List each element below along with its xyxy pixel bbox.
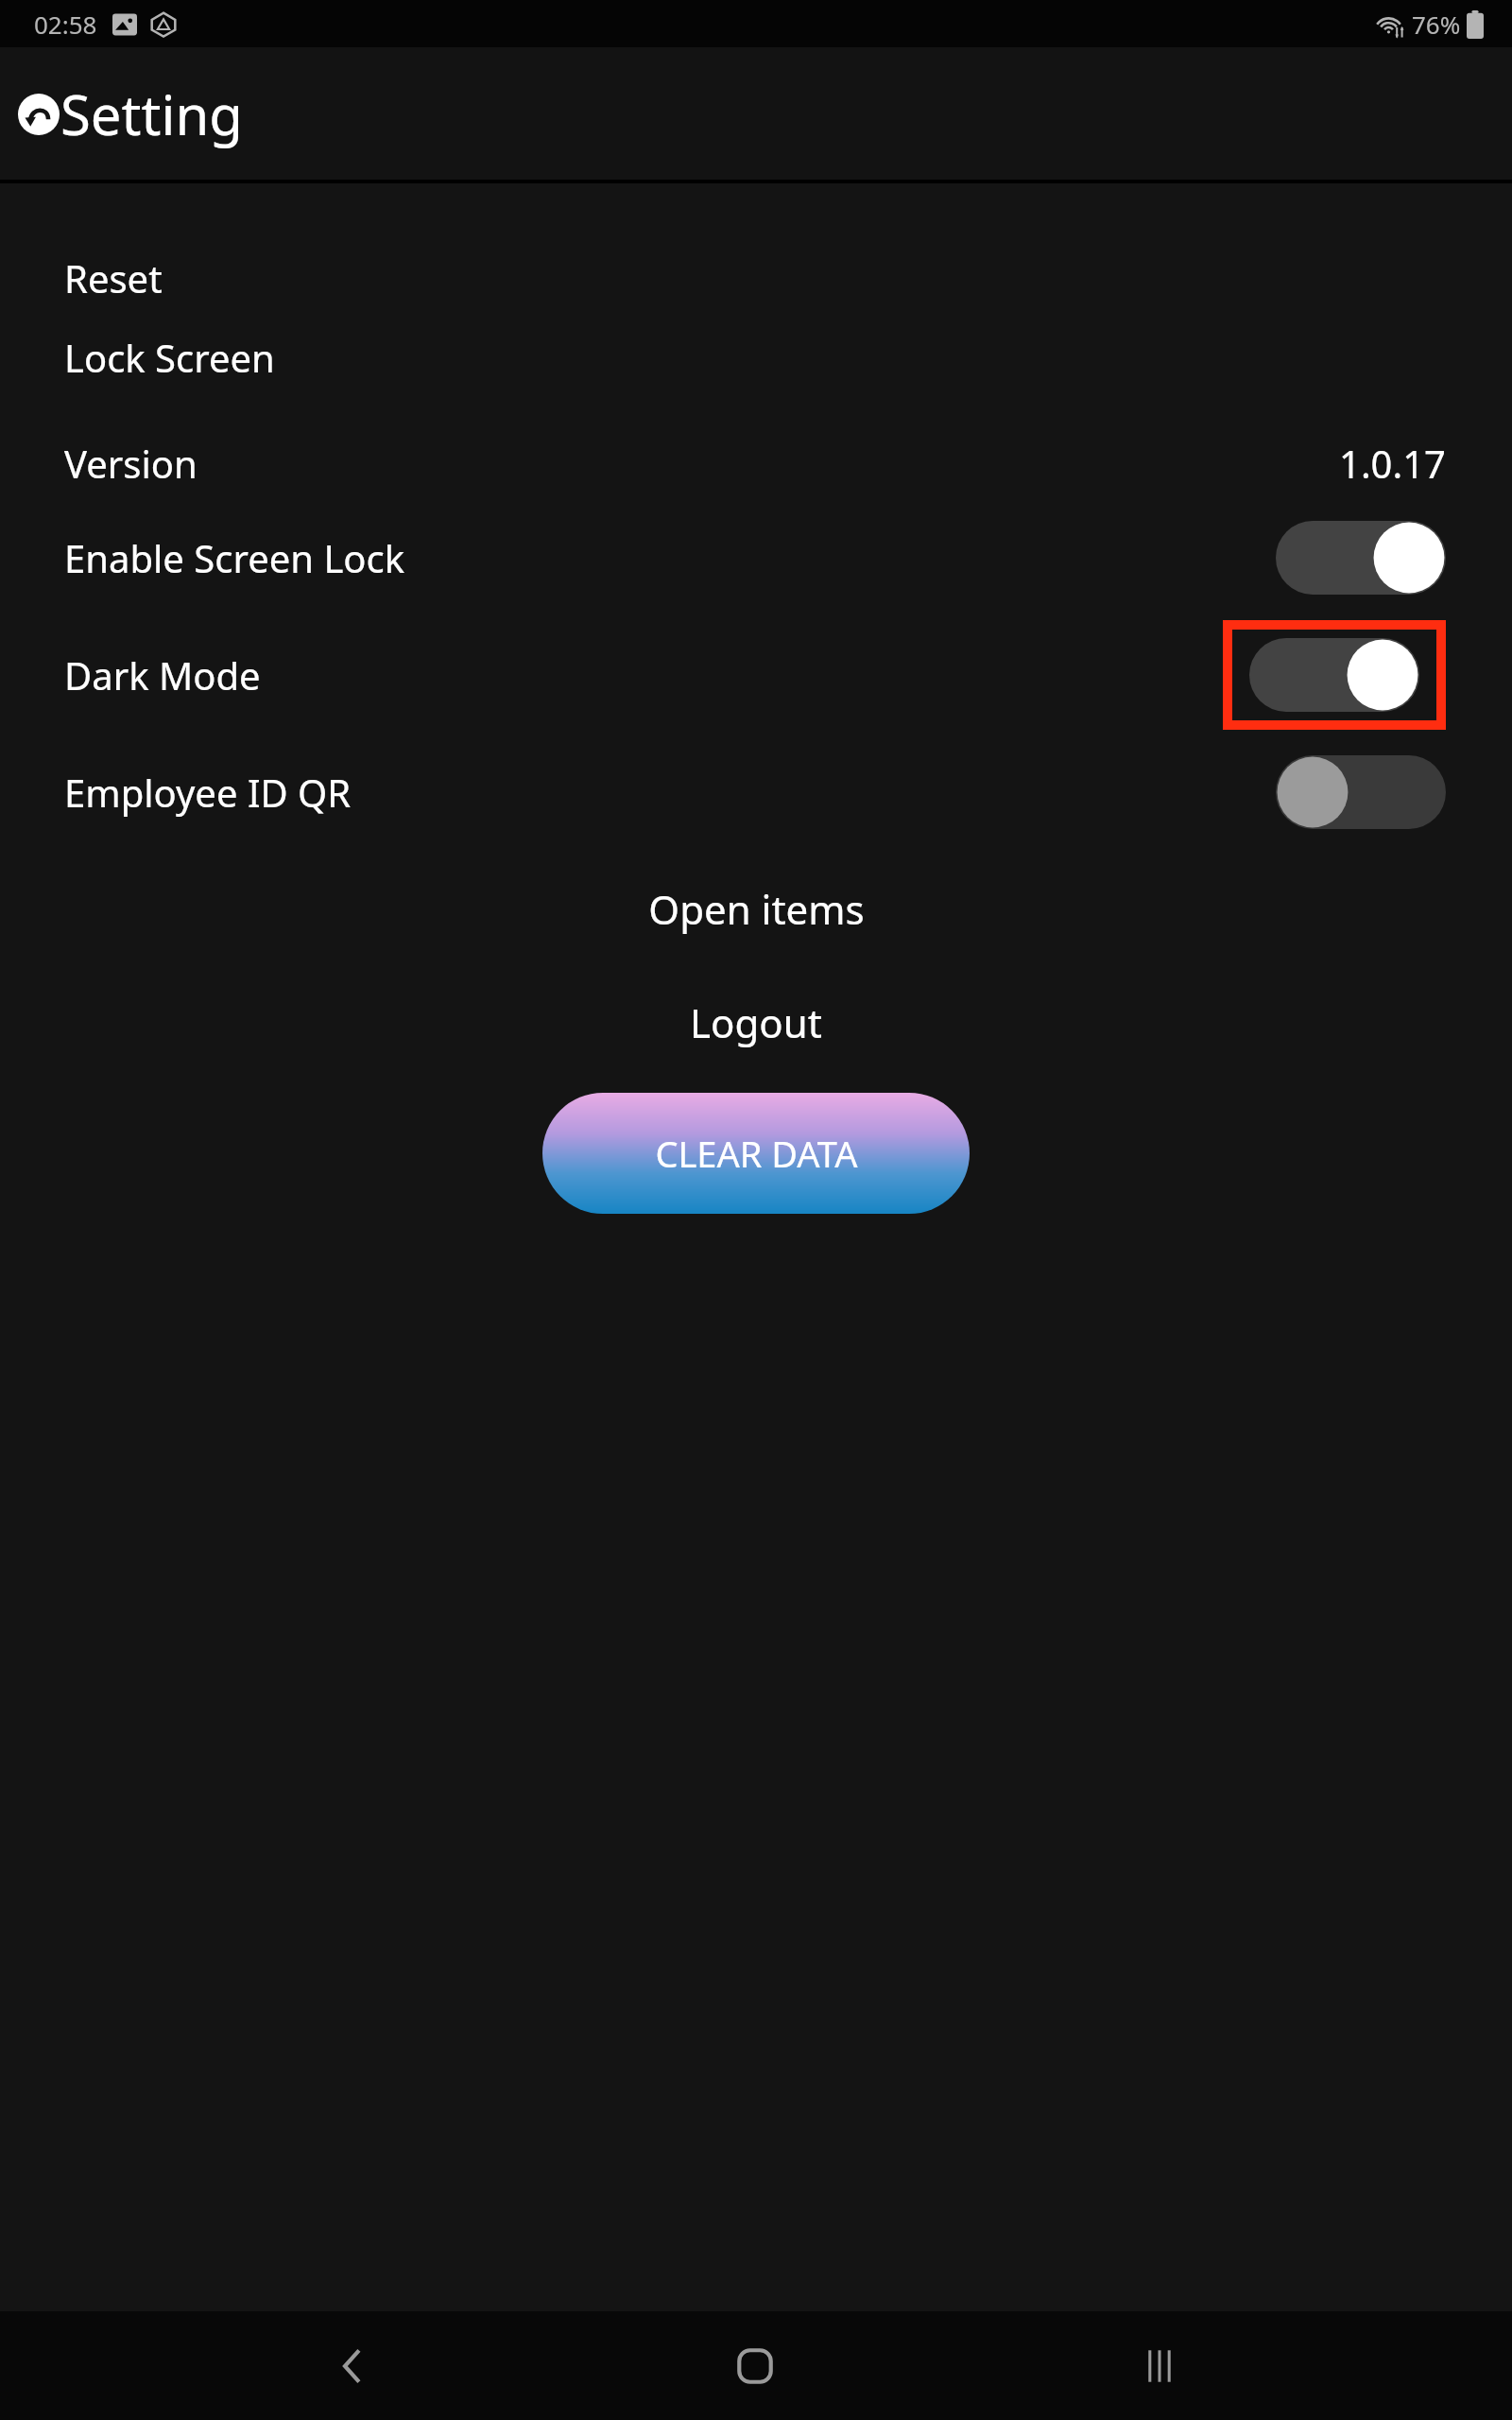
button[interactable]: Back — [300, 2314, 404, 2418]
button[interactable]: On — [1249, 638, 1419, 712]
button[interactable]: Recent apps — [1108, 2314, 1211, 2418]
button[interactable]: Version — [0, 433, 1512, 493]
button[interactable]: Dark Mode — [0, 620, 1512, 730]
staticText: Open items — [648, 882, 865, 936]
staticText: Lock Screen — [64, 332, 275, 383]
button[interactable]: Enable Screen Lock — [0, 503, 1512, 613]
staticText: Enable Screen Lock — [64, 532, 405, 583]
button[interactable]: Employee ID QR — [0, 737, 1512, 847]
button[interactable]: Logout — [0, 989, 1512, 1055]
button[interactable]: Lock Screen — [0, 329, 1512, 386]
staticText: Employee ID QR — [64, 767, 352, 818]
button[interactable]: On — [1276, 521, 1446, 595]
staticText: Version — [64, 438, 198, 489]
other: Back — [17, 93, 60, 136]
staticText: Logout — [690, 995, 822, 1049]
button[interactable]: Off — [1276, 755, 1446, 829]
staticText: 02:58 — [34, 8, 97, 41]
button[interactable]: CLEAR DATA — [542, 1093, 970, 1214]
staticText: Dark Mode — [64, 649, 261, 700]
staticText: Setting — [60, 77, 243, 151]
button[interactable]: Reset — [0, 250, 1512, 306]
staticText: Reset — [64, 252, 163, 303]
button[interactable]: Home — [703, 2314, 807, 2418]
button[interactable]: Open items — [0, 875, 1512, 942]
staticText: 76% — [1412, 8, 1461, 41]
staticText: 1.0.17 — [1339, 438, 1446, 489]
button[interactable]: Back — [17, 77, 243, 151]
staticText: CLEAR DATA — [655, 1129, 858, 1178]
